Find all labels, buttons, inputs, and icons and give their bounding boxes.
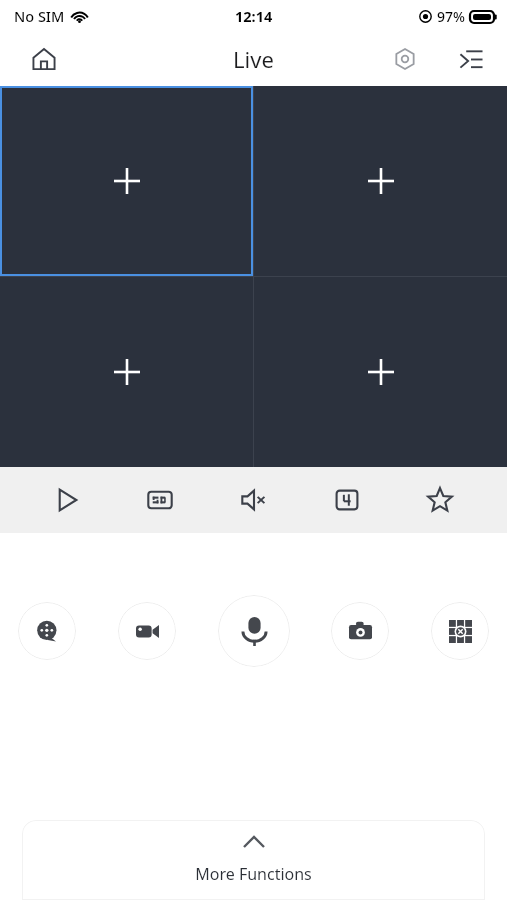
button[interactable]: Playback xyxy=(18,602,76,660)
button[interactable]: Favorite xyxy=(414,474,466,526)
button[interactable]: Play xyxy=(41,474,93,526)
button[interactable]: Add camera xyxy=(254,277,507,467)
button[interactable]: Add camera xyxy=(0,277,253,467)
button[interactable]: Snapshot xyxy=(331,602,389,660)
staticText: No SIM xyxy=(14,6,65,26)
button[interactable]: Split screen 4 xyxy=(321,474,373,526)
staticText: 12:14 xyxy=(235,6,273,26)
staticText: Live xyxy=(233,44,274,74)
staticText: 97% xyxy=(437,7,465,26)
button[interactable]: More Functions xyxy=(22,820,485,900)
button[interactable]: PTZ control xyxy=(431,602,489,660)
button[interactable]: Record video xyxy=(118,602,176,660)
button[interactable]: Add camera xyxy=(0,86,253,276)
button[interactable]: Mute xyxy=(228,474,280,526)
button[interactable]: List xyxy=(449,37,493,81)
button[interactable]: Stream quality SD xyxy=(134,474,186,526)
button[interactable]: Home xyxy=(22,37,66,81)
button[interactable]: Settings xyxy=(383,37,427,81)
staticText: More Functions xyxy=(195,863,312,885)
button[interactable]: Add camera xyxy=(254,86,507,276)
button[interactable]: Talk xyxy=(218,595,290,667)
